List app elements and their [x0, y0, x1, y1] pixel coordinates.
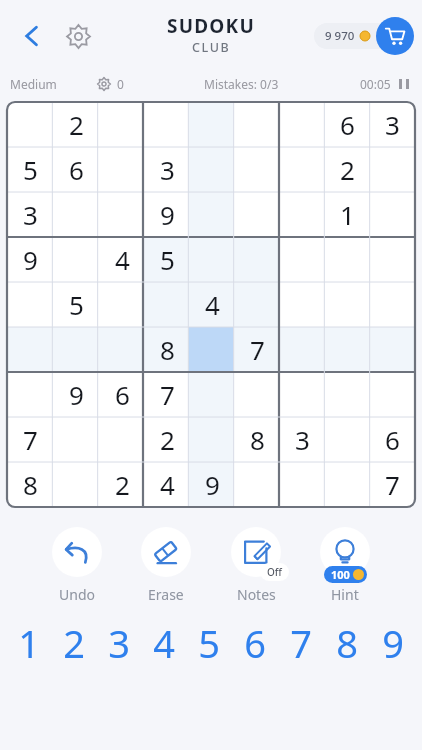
button[interactable]: [53, 327, 99, 372]
button[interactable]: 3: [280, 417, 325, 462]
button[interactable]: [235, 147, 280, 192]
button[interactable]: 9: [7, 237, 53, 282]
button[interactable]: [280, 462, 325, 507]
button[interactable]: 8: [235, 417, 280, 462]
button[interactable]: [7, 372, 53, 417]
button[interactable]: Pause: [396, 76, 412, 92]
button[interactable]: 3: [96, 614, 141, 672]
button[interactable]: [190, 372, 235, 417]
button[interactable]: [190, 147, 235, 192]
button[interactable]: 6: [99, 372, 145, 417]
button[interactable]: [235, 237, 280, 282]
button[interactable]: 4: [141, 614, 186, 672]
button[interactable]: [280, 237, 325, 282]
button[interactable]: [370, 147, 415, 192]
button[interactable]: 3: [370, 102, 415, 147]
button[interactable]: 7: [145, 372, 190, 417]
button[interactable]: [280, 327, 325, 372]
button[interactable]: 5: [145, 237, 190, 282]
button[interactable]: 4: [145, 462, 190, 507]
button[interactable]: [280, 102, 325, 147]
button[interactable]: [370, 282, 415, 327]
button[interactable]: [370, 372, 415, 417]
button[interactable]: [7, 282, 53, 327]
button[interactable]: 3: [7, 192, 53, 237]
button[interactable]: [280, 282, 325, 327]
button[interactable]: 9: [190, 462, 235, 507]
button[interactable]: Undo: [50, 525, 104, 604]
button[interactable]: [190, 237, 235, 282]
button[interactable]: [99, 102, 145, 147]
button[interactable]: [53, 237, 99, 282]
button[interactable]: 6: [232, 614, 278, 672]
staticText: 5: [69, 287, 84, 322]
button[interactable]: 6: [53, 147, 99, 192]
button[interactable]: [280, 192, 325, 237]
button[interactable]: [325, 282, 370, 327]
staticText: 8: [336, 617, 358, 669]
button[interactable]: 1: [325, 192, 370, 237]
button[interactable]: [235, 282, 280, 327]
button[interactable]: 7: [278, 614, 324, 672]
button[interactable]: 2: [51, 614, 96, 672]
button[interactable]: 1: [6, 614, 51, 672]
button[interactable]: 6: [370, 417, 415, 462]
button[interactable]: Settings: [56, 14, 100, 58]
button[interactable]: 2: [99, 462, 145, 507]
button[interactable]: [190, 102, 235, 147]
button[interactable]: [99, 417, 145, 462]
button[interactable]: 3: [145, 147, 190, 192]
button[interactable]: [325, 462, 370, 507]
button[interactable]: [145, 102, 190, 147]
button[interactable]: 6: [325, 102, 370, 147]
button[interactable]: [99, 192, 145, 237]
button[interactable]: [235, 462, 280, 507]
button[interactable]: 5: [186, 614, 232, 672]
button[interactable]: [370, 237, 415, 282]
button[interactable]: [280, 147, 325, 192]
button[interactable]: 5: [7, 147, 53, 192]
button[interactable]: [99, 282, 145, 327]
button[interactable]: [190, 417, 235, 462]
button[interactable]: Hint: [318, 525, 372, 604]
button[interactable]: 9: [370, 614, 416, 672]
button[interactable]: 7: [235, 327, 280, 372]
button[interactable]: 7: [370, 462, 415, 507]
button[interactable]: 8: [7, 462, 53, 507]
button[interactable]: 7: [7, 417, 53, 462]
button[interactable]: [7, 327, 53, 372]
button[interactable]: 9: [53, 372, 99, 417]
button[interactable]: Back: [10, 14, 54, 58]
button[interactable]: [53, 417, 99, 462]
button[interactable]: [99, 147, 145, 192]
button[interactable]: [235, 102, 280, 147]
button[interactable]: [190, 192, 235, 237]
button[interactable]: [325, 372, 370, 417]
button[interactable]: 4: [190, 282, 235, 327]
button[interactable]: 9: [145, 192, 190, 237]
button[interactable]: 2: [325, 147, 370, 192]
button[interactable]: Erase: [139, 525, 193, 604]
button[interactable]: [325, 417, 370, 462]
button[interactable]: [145, 282, 190, 327]
button[interactable]: [53, 192, 99, 237]
button[interactable]: 2: [145, 417, 190, 462]
button[interactable]: Shop, 9 970 coins: [300, 17, 414, 55]
button[interactable]: [325, 237, 370, 282]
button[interactable]: [99, 327, 145, 372]
button[interactable]: [325, 327, 370, 372]
button[interactable]: [370, 327, 415, 372]
button[interactable]: [280, 372, 325, 417]
button[interactable]: [235, 192, 280, 237]
button[interactable]: Notes: [229, 525, 283, 604]
button[interactable]: [190, 327, 235, 372]
button[interactable]: [7, 102, 53, 147]
button[interactable]: [235, 372, 280, 417]
button[interactable]: 5: [53, 282, 99, 327]
button[interactable]: 4: [99, 237, 145, 282]
button[interactable]: 8: [324, 614, 370, 672]
button[interactable]: 2: [53, 102, 99, 147]
button[interactable]: [53, 462, 99, 507]
button[interactable]: 8: [145, 327, 190, 372]
button[interactable]: [370, 192, 415, 237]
